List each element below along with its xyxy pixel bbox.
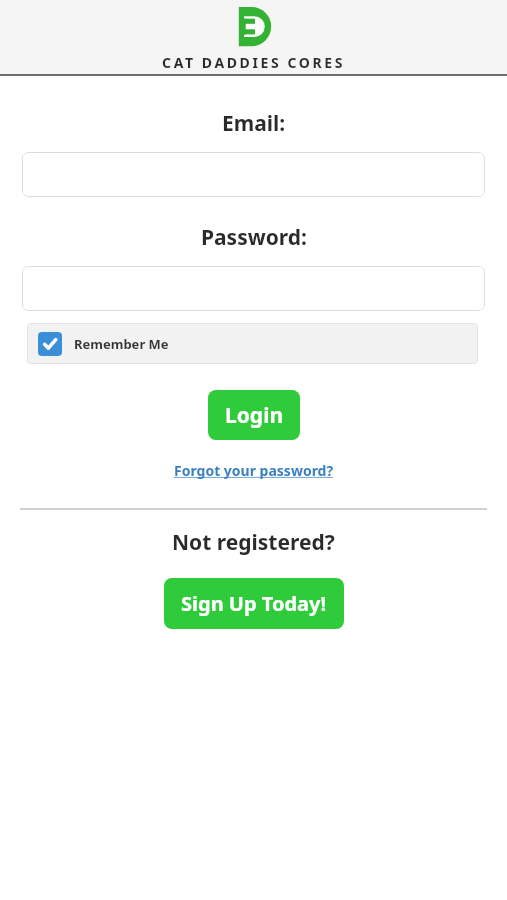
staticText: CAT DADDIES CORES xyxy=(162,53,345,72)
button[interactable]: Password input xyxy=(22,266,485,311)
button[interactable]: Remember Me checkbox xyxy=(27,323,478,364)
other: Cat Daddies Cores logo xyxy=(234,4,274,52)
staticText: Sign Up Today! xyxy=(181,590,327,617)
button[interactable]: Email input xyxy=(22,152,485,197)
button[interactable]: Remember Me checkbox xyxy=(38,332,62,356)
staticText: Login xyxy=(225,401,284,430)
button[interactable]: Login xyxy=(208,390,300,440)
staticText: Forgot your password? xyxy=(174,461,334,480)
button[interactable]: Sign Up Today! xyxy=(164,578,344,629)
staticText: Not registered? xyxy=(172,528,335,557)
button[interactable]: Forgot your password? xyxy=(174,461,334,480)
staticText: Remember Me xyxy=(74,335,169,353)
staticText: Email: xyxy=(222,109,286,138)
staticText: Password: xyxy=(201,223,307,252)
